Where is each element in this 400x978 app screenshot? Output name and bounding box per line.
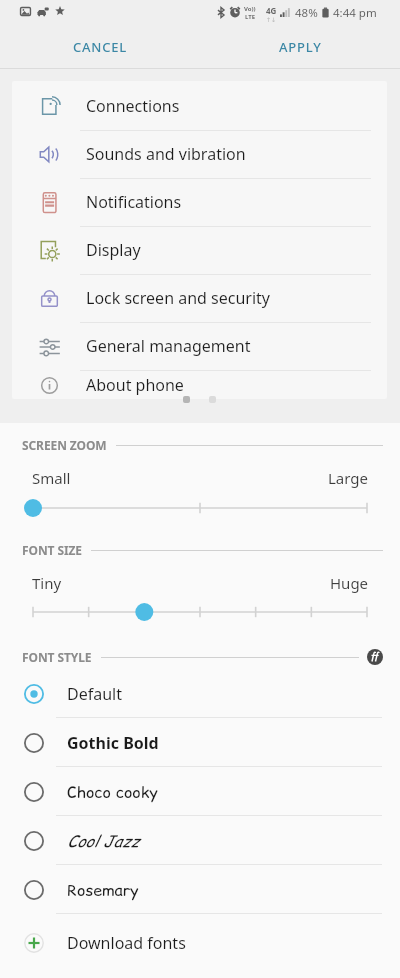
button[interactable]: Choco cooky [0, 767, 400, 816]
button[interactable]: Cool Jazz [0, 816, 400, 865]
staticText: Cool Jazz [67, 830, 139, 852]
button[interactable]: Notifications [12, 178, 387, 226]
staticText: About phone [86, 374, 184, 396]
staticText: Small [32, 468, 71, 488]
staticText: CANCEL [73, 38, 128, 56]
staticText: FONT STYLE [22, 649, 92, 665]
button[interactable] [24, 495, 376, 521]
staticText: Sounds and vibration [86, 143, 246, 165]
button[interactable]: CANCEL [0, 25, 200, 69]
staticText: Default [67, 683, 122, 705]
staticText: SCREEN ZOOM [22, 437, 107, 453]
staticText: Rosemary [67, 879, 139, 901]
button[interactable]: Font settings [367, 649, 383, 665]
staticText: FONT SIZE [22, 542, 82, 558]
staticText: Huge [330, 573, 369, 593]
staticText: Large [328, 468, 369, 488]
staticText: Vo)) [244, 5, 256, 13]
staticText: 48% [295, 5, 318, 21]
staticText: Tiny [32, 573, 62, 593]
staticText: 4:44 pm [333, 5, 377, 21]
staticText: APPLY [279, 38, 322, 56]
button[interactable]: Default [0, 656, 400, 718]
staticText: ↑↓ [266, 16, 277, 23]
button[interactable]: Display [12, 226, 387, 274]
staticText: Display [86, 239, 141, 261]
button[interactable]: About phone [12, 370, 387, 399]
button[interactable]: APPLY [200, 25, 400, 69]
staticText: Notifications [86, 191, 182, 213]
staticText: LTE [245, 13, 256, 21]
button[interactable]: Gothic Bold [0, 718, 400, 767]
button[interactable] [24, 599, 376, 625]
button[interactable]: Sounds and vibration [12, 130, 387, 178]
button[interactable]: Download fonts [0, 914, 400, 966]
button[interactable]: Connections [12, 82, 387, 130]
staticText: General management [86, 335, 251, 357]
button[interactable]: Rosemary [0, 865, 400, 914]
staticText: Lock screen and security [86, 287, 270, 309]
staticText: Choco cooky [67, 781, 158, 803]
staticText: Gothic Bold [67, 732, 159, 754]
button[interactable]: General management [12, 322, 387, 370]
staticText: Connections [86, 95, 180, 117]
staticText: 4G [266, 5, 277, 16]
staticText: Download fonts [67, 932, 186, 954]
button[interactable]: Lock screen and security [12, 274, 387, 322]
